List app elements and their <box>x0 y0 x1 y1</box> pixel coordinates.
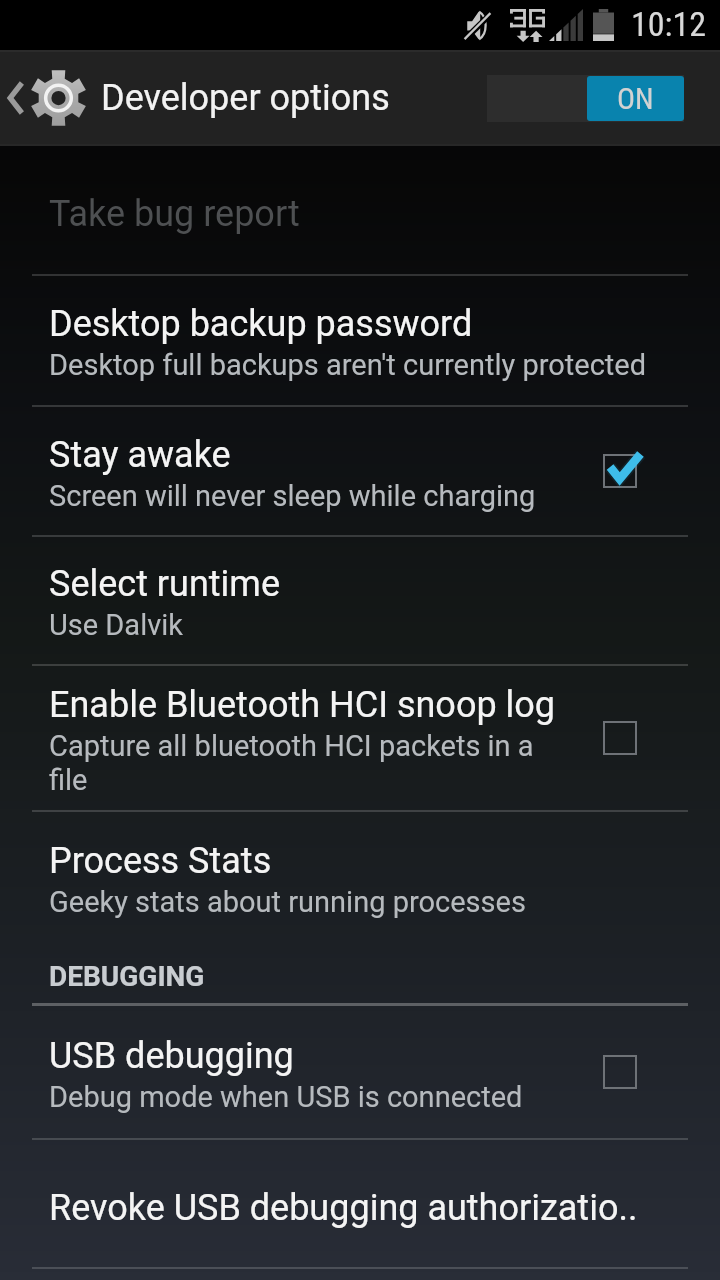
button[interactable]: Select runtime <box>0 537 720 664</box>
staticText: ON <box>617 81 654 116</box>
staticText: Stay awake <box>49 434 231 476</box>
staticText: DEBUGGING <box>49 960 205 993</box>
button[interactable]: Stay awake <box>0 407 720 535</box>
staticText: Developer options <box>101 77 390 119</box>
staticText: Desktop backup password <box>49 303 473 345</box>
button[interactable]: Toggle Enable Bluetooth HCI snoop log <box>588 706 652 770</box>
staticText: USB debugging <box>49 1035 294 1077</box>
button[interactable]: Navigate up <box>0 50 101 146</box>
staticText: Revoke USB debugging authorizatio.. <box>49 1187 638 1229</box>
button[interactable]: Desktop backup password <box>0 276 720 405</box>
staticText: Debug mode when USB is connected <box>49 1080 523 1114</box>
staticText: Geeky stats about running processes <box>49 885 526 919</box>
staticText: Take bug report <box>49 193 300 235</box>
staticText: Use Dalvik <box>49 608 183 642</box>
button[interactable]: Enable Bluetooth HCI snoop log <box>0 666 720 810</box>
button[interactable]: Toggle Stay awake <box>588 439 652 503</box>
staticText: Desktop full backups aren't currently pr… <box>49 348 647 382</box>
staticText: Screen will never sleep while charging <box>49 479 536 513</box>
button[interactable]: USB debugging <box>0 1006 720 1138</box>
button[interactable]: Toggle USB debugging <box>588 1040 652 1104</box>
button[interactable]: Revoke USB debugging authorizatio.. <box>0 1140 720 1267</box>
staticText: Process Stats <box>49 840 272 882</box>
staticText: Select runtime <box>49 563 280 605</box>
staticText: Enable Bluetooth HCI snoop log <box>49 684 556 726</box>
staticText: Capture all bluetooth HCI packets in a f… <box>49 729 570 797</box>
button[interactable]: Take bug report <box>0 146 720 274</box>
button[interactable]: Developer options on <box>487 75 684 122</box>
staticText: 10:12 <box>631 4 707 44</box>
button[interactable]: Process Stats <box>0 812 720 943</box>
